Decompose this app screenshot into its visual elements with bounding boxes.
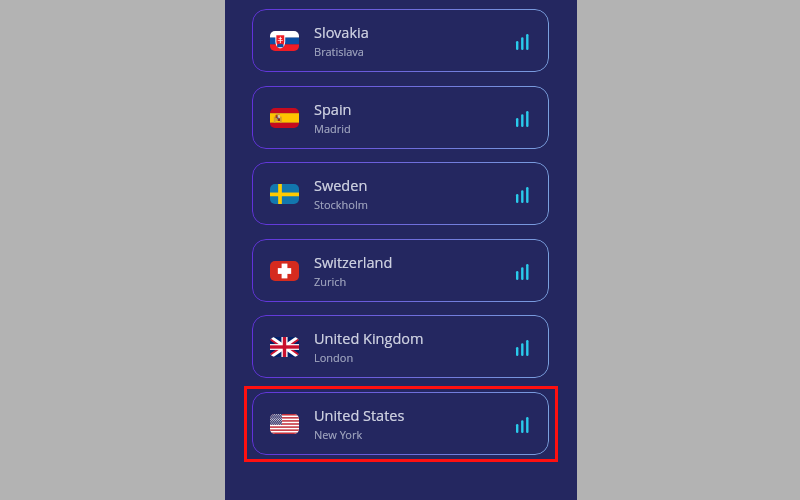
staticText: Slovakia [314, 23, 369, 43]
button[interactable]: Statistics [516, 416, 529, 433]
staticText: Sweden [314, 176, 368, 196]
staticText: Spain [314, 100, 352, 120]
button[interactable]: Sweden [252, 162, 549, 225]
button[interactable]: United States [252, 392, 549, 455]
staticText: Madrid [314, 121, 351, 136]
button[interactable]: United Kingdom [252, 315, 549, 378]
staticText: London [314, 350, 354, 365]
button[interactable]: Statistics [516, 263, 529, 280]
button[interactable]: Slovakia [252, 9, 549, 72]
staticText: Bratislava [314, 44, 364, 59]
button[interactable]: Spain [252, 86, 549, 149]
button[interactable]: Statistics [516, 339, 529, 356]
button[interactable]: Statistics [516, 186, 529, 203]
button[interactable]: Statistics [516, 110, 529, 127]
staticText: United States [314, 406, 405, 426]
staticText: New York [314, 427, 363, 442]
button[interactable]: Switzerland [252, 239, 549, 302]
staticText: Zurich [314, 274, 347, 289]
staticText: Stockholm [314, 197, 368, 212]
staticText: Switzerland [314, 253, 393, 273]
staticText: United Kingdom [314, 329, 424, 349]
button[interactable]: Statistics [516, 33, 529, 50]
